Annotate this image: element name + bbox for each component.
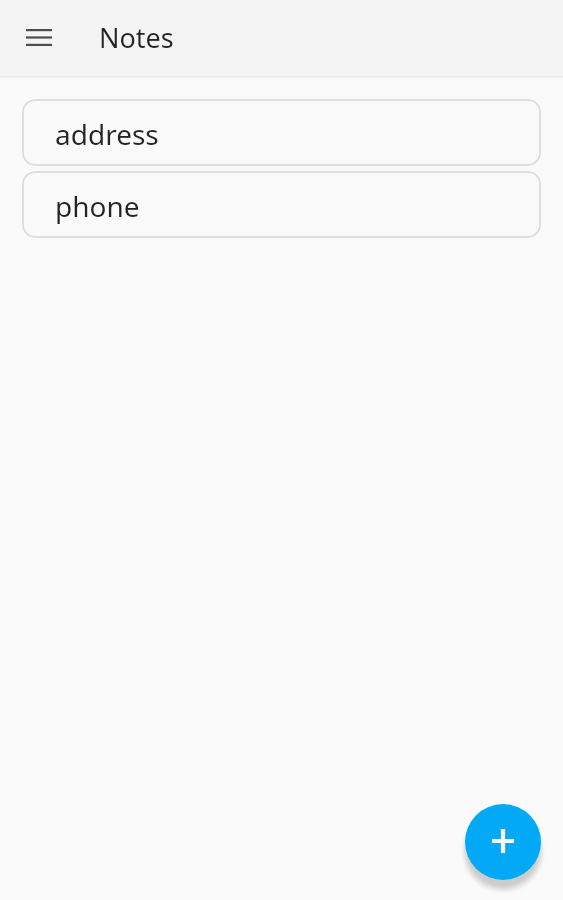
button[interactable]: Open navigation menu — [15, 13, 63, 61]
staticText: phone — [55, 187, 140, 225]
button[interactable]: address — [22, 99, 541, 166]
staticText: address — [55, 115, 159, 153]
button[interactable]: phone — [22, 171, 541, 238]
button[interactable]: Add note — [465, 804, 541, 880]
staticText: Notes — [99, 19, 174, 56]
